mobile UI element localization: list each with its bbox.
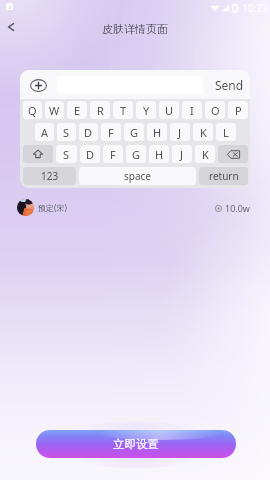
button[interactable]: K [193, 123, 213, 141]
staticText: 123 [41, 169, 59, 183]
staticText: 预定(宋) [38, 202, 67, 213]
staticText: I [190, 103, 194, 118]
staticText: Y [143, 103, 150, 118]
button[interactable]: H [147, 123, 167, 141]
button[interactable]: space [79, 167, 196, 185]
button[interactable]: Backspace [218, 145, 248, 163]
staticText: K [200, 125, 207, 140]
staticText: 10.0w [225, 202, 250, 214]
button[interactable]: 立即设置 [36, 430, 236, 458]
staticText: U [165, 103, 174, 118]
staticText: O [211, 103, 220, 118]
button[interactable]: O [205, 101, 225, 119]
staticText: F [110, 147, 116, 162]
button[interactable]: D [79, 123, 98, 141]
button[interactable]: return [199, 167, 248, 185]
staticText: J [180, 147, 184, 162]
button[interactable]: Back [1, 17, 21, 37]
staticText: G [132, 147, 141, 162]
staticText: L [223, 125, 229, 140]
staticText: P [235, 103, 242, 118]
staticText: J [178, 125, 182, 140]
button[interactable]: J [170, 123, 190, 141]
button[interactable]: Add [29, 78, 47, 92]
button[interactable]: J [172, 145, 192, 163]
staticText: H [155, 147, 164, 162]
button[interactable]: Send [208, 76, 250, 94]
other: Backspace [227, 150, 240, 159]
button[interactable]: R [90, 101, 110, 119]
button[interactable]: W [45, 101, 64, 119]
button[interactable]: U [159, 101, 179, 119]
button[interactable]: P [228, 101, 248, 119]
button[interactable]: S [57, 123, 76, 141]
button[interactable]: 123 [23, 167, 76, 185]
staticText: F [108, 125, 114, 140]
button[interactable]: T [113, 101, 133, 119]
button[interactable]: Q [23, 101, 42, 119]
staticText: S [63, 147, 70, 162]
staticText: 皮肤详情页面 [102, 22, 168, 36]
staticText: G [130, 125, 139, 140]
button[interactable]: D [80, 145, 100, 163]
button[interactable]: L [216, 123, 236, 141]
staticText: R [97, 103, 104, 118]
button[interactable]: K [195, 145, 215, 163]
staticText: S [63, 125, 70, 140]
staticText: A [41, 125, 49, 140]
button[interactable]: F [103, 145, 123, 163]
staticText: K [202, 147, 209, 162]
button[interactable]: I [182, 101, 202, 119]
staticText: 10:23 [242, 1, 268, 15]
button[interactable]: A [35, 123, 54, 141]
staticText: D [84, 125, 93, 140]
staticText: H [153, 125, 162, 140]
staticText: return [209, 169, 239, 183]
button[interactable]: Shift [23, 145, 53, 163]
button[interactable]: H [149, 145, 169, 163]
staticText: Send [215, 77, 244, 93]
staticText: space [124, 169, 151, 183]
staticText: 立即设置 [113, 437, 159, 451]
button[interactable]: Y [136, 101, 156, 119]
other: Shift [33, 149, 43, 159]
staticText: E [74, 103, 81, 118]
button[interactable]: G [124, 123, 144, 141]
button[interactable]: F [101, 123, 121, 141]
button[interactable]: G [126, 145, 146, 163]
button[interactable]: S [56, 145, 77, 163]
staticText: D [86, 147, 95, 162]
staticText: W [49, 103, 60, 118]
button[interactable]: E [67, 101, 87, 119]
staticText: Q [28, 103, 37, 118]
staticText: T [120, 103, 127, 118]
